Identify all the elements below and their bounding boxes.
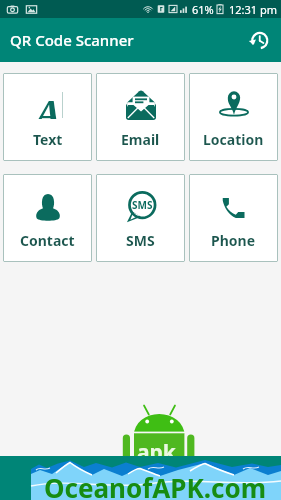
staticText: SMS <box>126 231 155 250</box>
button[interactable]: SMS <box>96 174 185 262</box>
staticText: Phone <box>211 231 256 250</box>
button[interactable]: Email <box>96 73 185 161</box>
staticText: apk <box>137 438 176 467</box>
staticText: 61% <box>192 2 214 17</box>
staticText: Contact <box>20 231 75 250</box>
button[interactable]: Location <box>189 73 278 161</box>
staticText: 12:31 pm <box>229 2 278 17</box>
button[interactable]: Phone <box>189 174 278 262</box>
button[interactable]: History <box>242 24 274 56</box>
staticText: Text <box>33 130 63 149</box>
staticText: Email <box>121 130 160 149</box>
staticText: OceanofAPK.com <box>44 470 267 500</box>
staticText: QR Code Scanner <box>10 30 134 50</box>
staticText: SMS <box>132 198 153 212</box>
button[interactable]: A <box>3 73 92 161</box>
staticText: A <box>34 89 62 119</box>
button[interactable]: Contact <box>3 174 92 262</box>
staticText: Location <box>203 130 264 149</box>
